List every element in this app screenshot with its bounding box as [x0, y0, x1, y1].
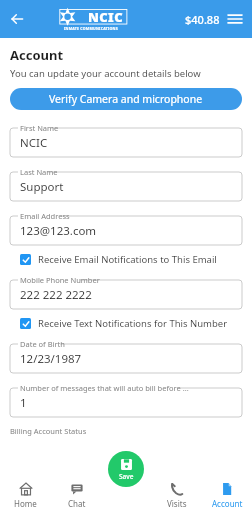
staticText: Number of messages that will auto bill b…	[20, 383, 189, 393]
staticText: Account	[10, 46, 64, 64]
staticText: 222 222 2222	[20, 287, 92, 303]
staticText: NCIC	[20, 135, 48, 151]
staticText: INMATE COMMUNICATIONS	[64, 26, 118, 31]
staticText: 12/23/1987	[20, 351, 82, 367]
button[interactable]: Save	[108, 451, 144, 487]
staticText: NCIC	[88, 8, 124, 26]
staticText: You can update your account details belo…	[10, 67, 201, 80]
staticText: Date of Birth	[20, 339, 65, 349]
staticText: Visits	[167, 498, 187, 509]
staticText: Email Address	[20, 211, 70, 221]
staticText: Receive Text Notifications for This Numb…	[38, 317, 228, 330]
button[interactable]: Chat	[51, 478, 102, 512]
staticText: Billing Account Status	[10, 426, 87, 436]
staticText: Last Name	[20, 167, 58, 177]
button[interactable]: Menu	[223, 7, 247, 31]
staticText: Chat	[68, 498, 86, 509]
button[interactable]: Back	[4, 6, 30, 32]
staticText: Receive Email Notifications to This Emai…	[38, 253, 217, 266]
button[interactable]: Verify Camera and microphone	[10, 88, 242, 110]
button[interactable]: Home	[0, 478, 51, 512]
staticText: Verify Camera and microphone	[49, 92, 203, 106]
staticText: 1	[20, 395, 27, 411]
staticText: Support	[20, 179, 64, 195]
button[interactable]: Account	[202, 478, 252, 512]
button[interactable]: Email Address	[10, 210, 242, 245]
staticText: Save	[119, 472, 134, 481]
button[interactable]: Receive Email Notifications to This Emai…	[10, 249, 242, 269]
staticText: 123@123.com	[20, 223, 97, 239]
button[interactable]: $40.88	[185, 12, 220, 27]
button[interactable]: Visits	[152, 478, 202, 512]
button[interactable]: Receive Text Notifications for This Numb…	[10, 313, 242, 333]
staticText: First Name	[20, 123, 59, 133]
button[interactable]: Number of messages that will auto bill b…	[10, 382, 242, 417]
staticText: Home	[14, 498, 37, 509]
button[interactable]: Mobile Phone Number	[10, 274, 242, 309]
staticText: Mobile Phone Number	[20, 275, 100, 285]
button[interactable]: Date of Birth	[10, 338, 242, 373]
button[interactable]: Last Name	[10, 166, 242, 201]
staticText: Account	[212, 498, 243, 509]
button[interactable]: First Name	[10, 122, 242, 157]
